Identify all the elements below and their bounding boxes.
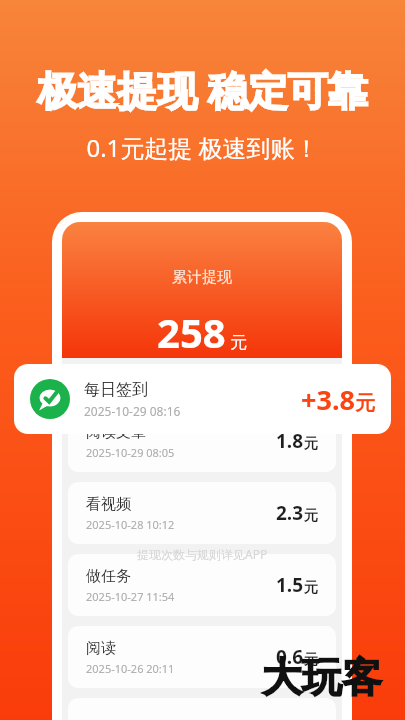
staticText: 1.8 xyxy=(276,428,304,454)
staticText: 元 xyxy=(304,507,318,525)
staticText: 阅读 xyxy=(86,639,116,658)
staticText: 元 xyxy=(304,651,318,669)
button[interactable]: 看视频 xyxy=(68,482,336,544)
staticText: 阅读文章 xyxy=(86,423,146,442)
staticText: 累计提现 xyxy=(172,268,232,287)
staticText: 2025-10-27 11:54 xyxy=(86,589,175,604)
staticText: 0.1元起提 极速到账！ xyxy=(86,131,319,164)
staticText: 2025-10-29 08:05 xyxy=(86,445,175,460)
staticText: 元 xyxy=(230,332,247,353)
staticText: 元 xyxy=(304,435,318,453)
staticText: 大玩客 xyxy=(262,652,382,702)
staticText: 极速提现 稳定可靠 xyxy=(37,62,368,117)
other: WeChat sign-in xyxy=(30,379,70,419)
staticText: 元 xyxy=(304,579,318,597)
staticText: 1.5 xyxy=(276,572,304,598)
button[interactable]: 做任务 xyxy=(68,554,336,616)
staticText: 0.6 xyxy=(276,644,304,670)
staticText: +3.8 xyxy=(301,381,355,418)
staticText: 每日签到 xyxy=(84,380,148,400)
staticText: 做任务 xyxy=(86,567,131,586)
staticText: 258 xyxy=(157,305,226,358)
button[interactable]: 阅读文章 xyxy=(68,410,336,472)
button[interactable]: 阅读 xyxy=(68,626,336,688)
staticText: 2025-10-28 10:12 xyxy=(86,517,175,532)
staticText: 2025-10-26 20:11 xyxy=(86,661,175,676)
staticText: 元 xyxy=(355,391,375,416)
staticText: 看视频 xyxy=(86,495,131,514)
staticText: 2025-10-29 08:16 xyxy=(84,403,181,419)
button[interactable]: WeChat sign-in xyxy=(14,364,391,434)
staticText: 2.3 xyxy=(276,500,304,526)
staticText: 提现次数与规则详见APP xyxy=(137,546,268,562)
